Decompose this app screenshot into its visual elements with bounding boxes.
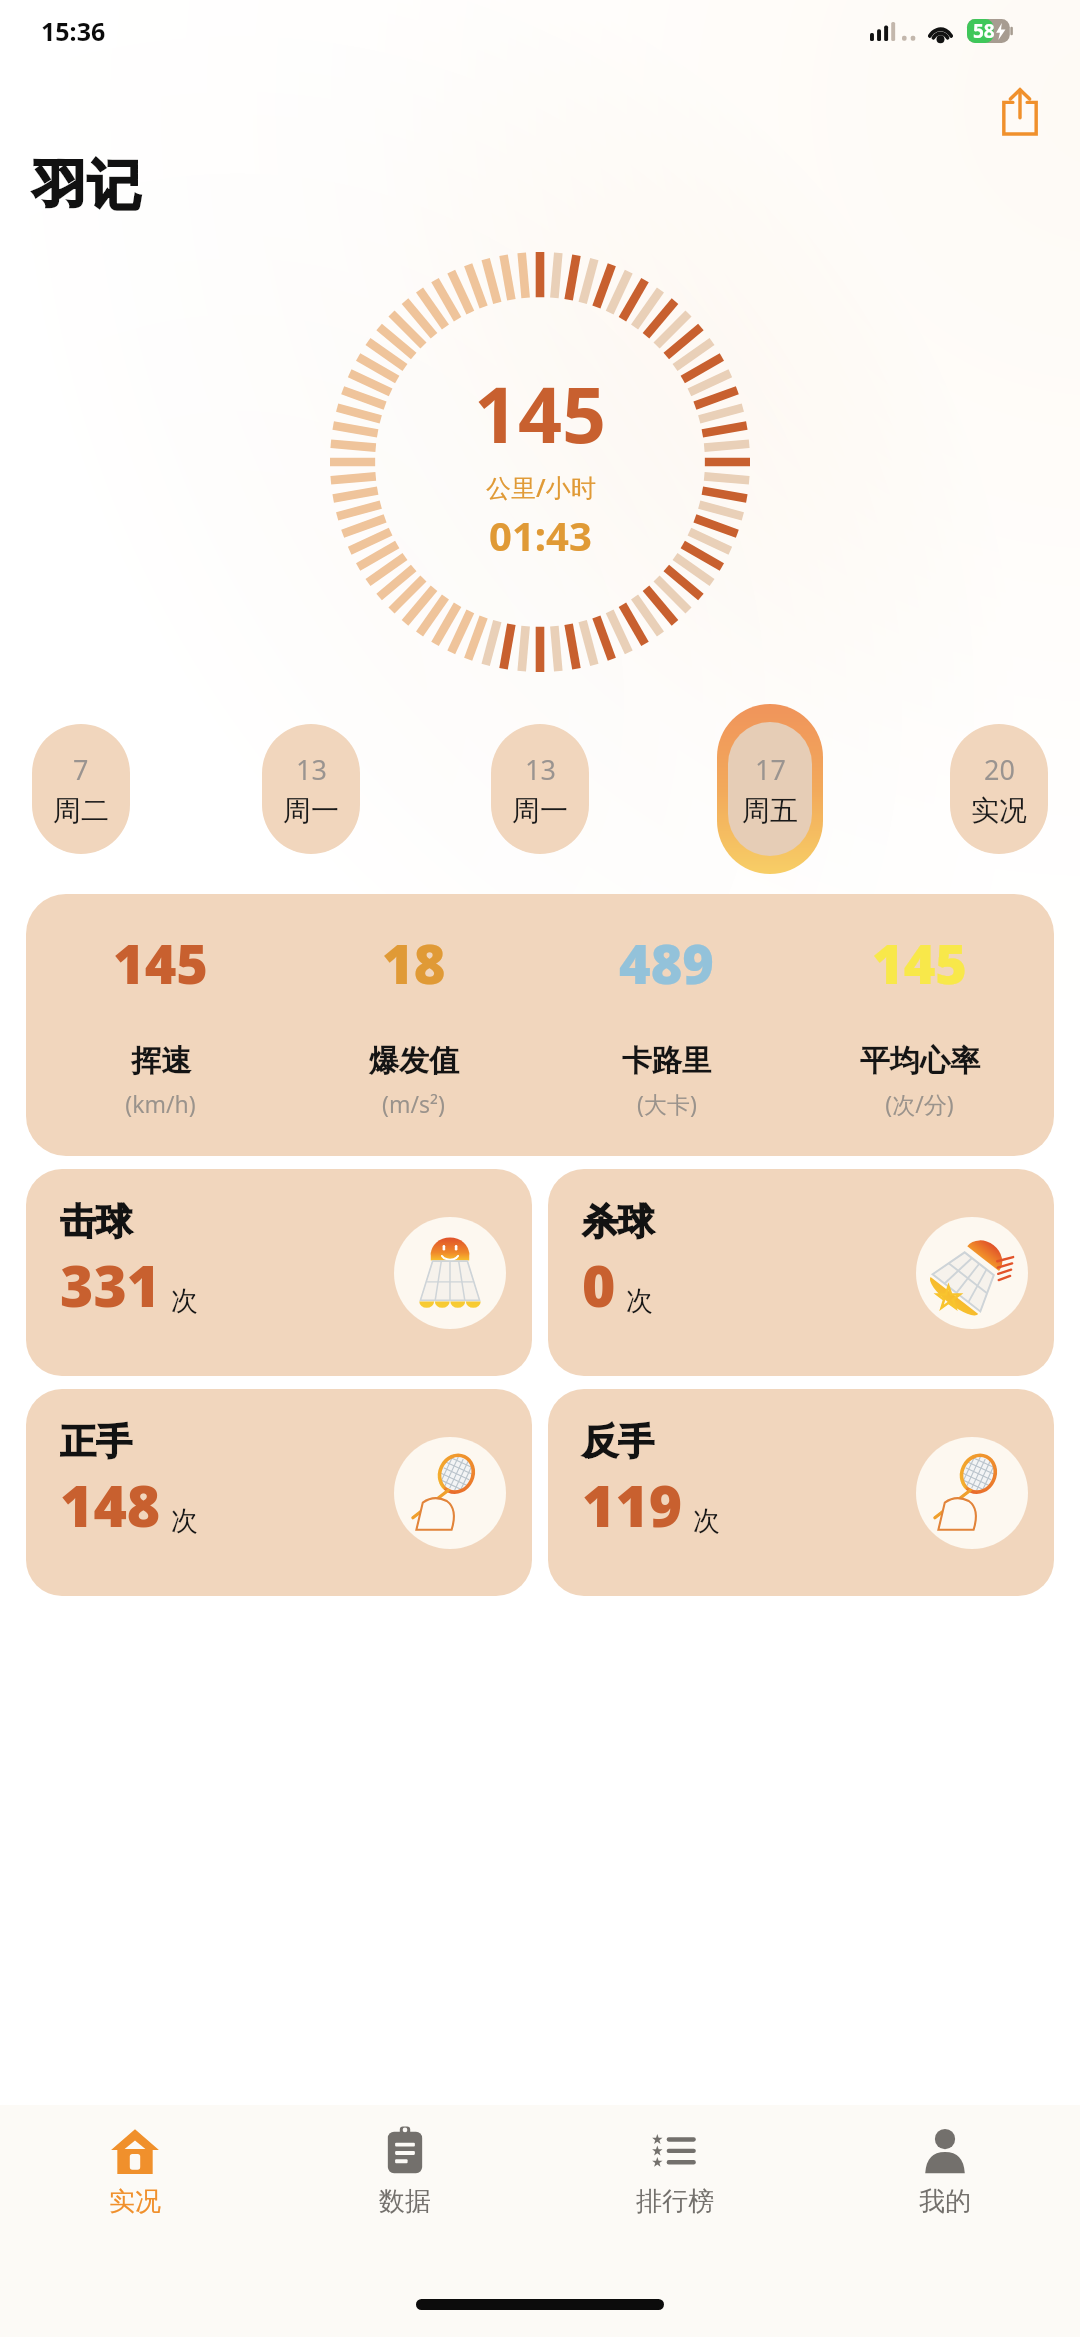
- staticText: 145: [872, 926, 967, 1000]
- button[interactable]: 17: [715, 701, 825, 876]
- button[interactable]: 13: [485, 719, 595, 859]
- button[interactable]: 145: [26, 894, 1054, 1156]
- staticText: 489: [619, 926, 714, 1000]
- staticText: 145: [113, 926, 208, 1000]
- button[interactable]: 7: [26, 719, 136, 859]
- staticText: 145: [474, 361, 607, 466]
- staticText: (m/s²): [382, 1088, 445, 1119]
- staticText: 杀球: [582, 1199, 654, 1244]
- staticText: (次/分): [885, 1088, 954, 1119]
- staticText: 羽记: [33, 152, 141, 220]
- button[interactable]: 数据: [270, 2105, 540, 2255]
- button[interactable]: 实况: [0, 2105, 270, 2255]
- staticText: 周五: [742, 793, 798, 828]
- staticText: 13: [525, 751, 556, 788]
- staticText: 0: [582, 1246, 616, 1324]
- staticText: 周二: [53, 793, 109, 828]
- staticText: 01:43: [489, 508, 592, 562]
- staticText: 实况: [109, 2185, 161, 2218]
- staticText: 次: [171, 1504, 198, 1538]
- staticText: 正手: [60, 1419, 132, 1464]
- button[interactable]: 13: [256, 719, 366, 859]
- staticText: 公里/小时: [486, 470, 596, 504]
- button[interactable]: Share: [988, 80, 1052, 144]
- button[interactable]: 反手: [548, 1389, 1054, 1596]
- staticText: 平均心率: [860, 1042, 980, 1080]
- staticText: 反手: [582, 1419, 654, 1464]
- staticText: 7: [73, 751, 89, 788]
- button[interactable]: 我的: [810, 2105, 1080, 2255]
- button[interactable]: 正手: [26, 1389, 532, 1596]
- staticText: 击球: [60, 1199, 132, 1244]
- button[interactable]: 20: [944, 719, 1054, 859]
- staticText: 13: [296, 751, 327, 788]
- staticText: 17: [755, 751, 786, 788]
- staticText: 次: [693, 1504, 720, 1538]
- staticText: (km/h): [125, 1088, 196, 1119]
- staticText: 次: [171, 1284, 198, 1318]
- staticText: 148: [60, 1466, 161, 1544]
- staticText: 我的: [919, 2185, 971, 2218]
- button[interactable]: 排行榜: [540, 2105, 810, 2255]
- staticText: 数据: [379, 2185, 431, 2218]
- staticText: 58: [973, 18, 995, 44]
- staticText: 周一: [512, 793, 568, 828]
- button[interactable]: 击球: [26, 1169, 532, 1376]
- staticText: 331: [60, 1246, 161, 1324]
- button[interactable]: 杀球: [548, 1169, 1054, 1376]
- staticText: 爆发值: [369, 1042, 459, 1080]
- staticText: 18: [382, 926, 446, 1000]
- staticText: 挥速: [131, 1042, 191, 1080]
- staticText: 排行榜: [636, 2185, 714, 2218]
- staticText: 周一: [283, 793, 339, 828]
- staticText: 119: [582, 1466, 683, 1544]
- staticText: 卡路里: [622, 1042, 712, 1080]
- staticText: 15:36: [41, 14, 106, 48]
- staticText: (大卡): [637, 1088, 697, 1119]
- staticText: 实况: [971, 793, 1027, 828]
- staticText: 次: [626, 1284, 653, 1318]
- staticText: 20: [984, 751, 1015, 788]
